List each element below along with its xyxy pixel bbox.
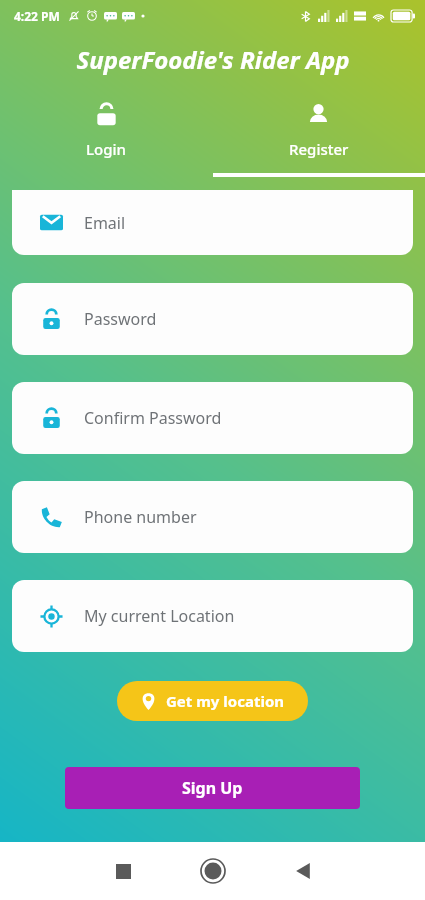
button[interactable]: Sign Up (65, 767, 360, 809)
staticText: Sign Up (182, 777, 243, 799)
button[interactable]: Password (12, 283, 413, 355)
staticText: Login (86, 139, 126, 159)
button[interactable]: My current Location (12, 580, 413, 652)
staticText: Register (289, 139, 349, 159)
button[interactable]: Register (212, 87, 425, 177)
staticText: Confirm Password (84, 407, 222, 429)
button[interactable]: Recent apps (78, 842, 168, 900)
button[interactable]: Confirm Password (12, 382, 413, 454)
staticText: Password (84, 308, 157, 330)
button[interactable]: Back (258, 842, 348, 900)
button[interactable]: Email (12, 190, 413, 255)
staticText: 4:22 PM (14, 8, 60, 24)
button[interactable]: Get my location (117, 681, 308, 721)
button[interactable]: Home (168, 842, 258, 900)
staticText: Get my location (166, 691, 285, 711)
staticText: My current Location (84, 605, 235, 627)
button[interactable]: Phone number (12, 481, 413, 553)
staticText: Email (84, 212, 126, 234)
staticText: Phone number (84, 506, 197, 528)
staticText: SuperFoodie's Rider App (76, 43, 350, 76)
button[interactable]: Login (0, 87, 212, 177)
